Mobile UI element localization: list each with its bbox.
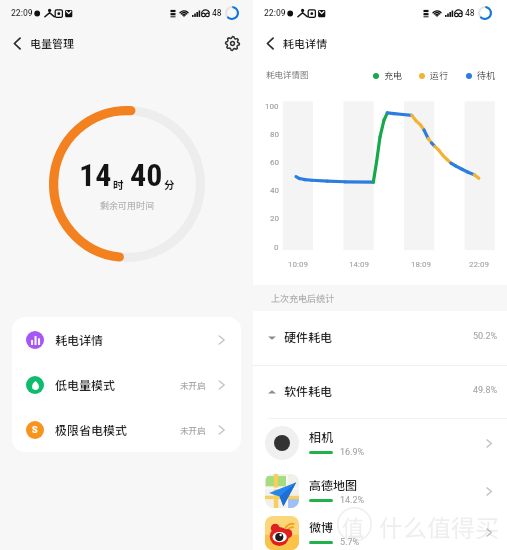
button[interactable]: 微博 — [253, 515, 507, 550]
staticText: 14 — [79, 156, 112, 194]
staticText: 20 — [270, 214, 279, 223]
staticText: 极限省电模式 — [55, 421, 128, 438]
staticText: 分 — [164, 177, 175, 192]
staticText: 电量管理 — [30, 35, 74, 51]
staticText: 49.8% — [473, 385, 498, 396]
staticText: 值 — [342, 510, 365, 542]
staticText: 22:09 — [11, 8, 33, 18]
staticText: 耗电详情 — [55, 331, 104, 348]
staticText: 60 — [270, 158, 279, 167]
staticText: 16.9% — [340, 447, 365, 458]
staticText: 48 — [212, 8, 222, 18]
staticText: 运行 — [430, 69, 449, 82]
staticText: 100 — [265, 102, 279, 111]
staticText: 硬件耗电 — [284, 328, 333, 345]
button[interactable]: S — [12, 407, 241, 452]
staticText: 22:09 — [264, 8, 286, 18]
staticText: 相机 — [309, 428, 334, 445]
button[interactable]: 软件耗电 — [253, 366, 507, 418]
button[interactable]: 硬件耗电 — [253, 311, 507, 365]
staticText: 上次充电后统计 — [271, 292, 335, 305]
staticText: 低电量模式 — [55, 376, 116, 393]
staticText: 80 — [270, 130, 279, 139]
staticText: 充电 — [384, 69, 403, 82]
staticText: 50.2% — [473, 331, 498, 342]
button[interactable]: 相机 — [253, 419, 507, 467]
staticText: 剩余可用时间 — [100, 199, 155, 212]
button[interactable]: Back — [7, 33, 27, 53]
staticText: 软件耗电 — [284, 382, 333, 399]
staticText: 40 — [270, 186, 279, 195]
button[interactable]: Settings — [222, 33, 242, 53]
button[interactable]: 高德地图 — [253, 467, 507, 515]
staticText: 高德地图 — [309, 476, 358, 493]
staticText: 22:09 — [469, 260, 489, 269]
staticText: 什么值得买 — [379, 509, 499, 544]
button[interactable]: Back — [260, 33, 280, 53]
button[interactable]: 耗电详情 — [12, 317, 241, 362]
staticText: 0 — [274, 243, 279, 252]
staticText: 微博 — [309, 518, 334, 535]
staticText: 未开启 — [180, 424, 206, 436]
staticText: 耗电详情图 — [266, 68, 309, 80]
staticText: 待机 — [477, 69, 496, 82]
staticText: 耗电详情 — [283, 35, 327, 51]
staticText: 5.7% — [340, 537, 360, 548]
button[interactable]: 低电量模式 — [12, 362, 241, 407]
staticText: S — [32, 425, 38, 436]
staticText: 48 — [465, 8, 475, 18]
staticText: 时 — [113, 177, 124, 192]
staticText: 18:09 — [411, 260, 431, 269]
staticText: 10:09 — [288, 260, 308, 269]
staticText: 未开启 — [180, 379, 206, 391]
staticText: 14.2% — [340, 495, 365, 506]
staticText: 14:09 — [349, 260, 369, 269]
staticText: 40 — [130, 156, 163, 194]
